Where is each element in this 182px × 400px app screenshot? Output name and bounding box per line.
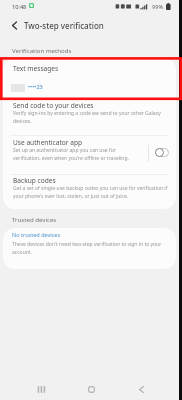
staticText: Text messages [13, 64, 59, 73]
button[interactable]: Home [80, 378, 103, 400]
button[interactable]: No trusted devices [3, 228, 176, 269]
staticText: 99% [152, 3, 164, 11]
staticText: Verify sign-ins by entering a code we se… [13, 110, 169, 124]
staticText: 10:48 [12, 3, 27, 11]
button[interactable]: Send code to your devices [3, 98, 176, 136]
staticText: Backup codes [13, 176, 56, 185]
staticText: Send code to your devices [13, 101, 94, 110]
staticText: Get a set of single-use backup codes you… [13, 185, 170, 199]
staticText: Trusted devices [12, 215, 57, 223]
staticText: These devices don't need two-step verifi… [12, 241, 170, 255]
staticText: Set up an authenticator app you can use … [13, 147, 136, 161]
button[interactable]: Navigate up [6, 17, 23, 34]
staticText: Two-step verification [24, 20, 104, 31]
button[interactable]: Recent apps [29, 378, 52, 400]
staticText: ••••23 [28, 83, 43, 91]
button[interactable]: Use authenticator app [3, 135, 176, 174]
button[interactable]: Backup codes [3, 174, 176, 209]
button[interactable]: Use authenticator app toggle [150, 141, 174, 164]
button[interactable]: Back [130, 378, 153, 400]
staticText: No trusted devices [12, 231, 61, 238]
staticText: Verification methods [12, 46, 72, 54]
staticText: Use authenticator app [13, 138, 82, 147]
button[interactable]: Text messages [3, 58, 176, 98]
